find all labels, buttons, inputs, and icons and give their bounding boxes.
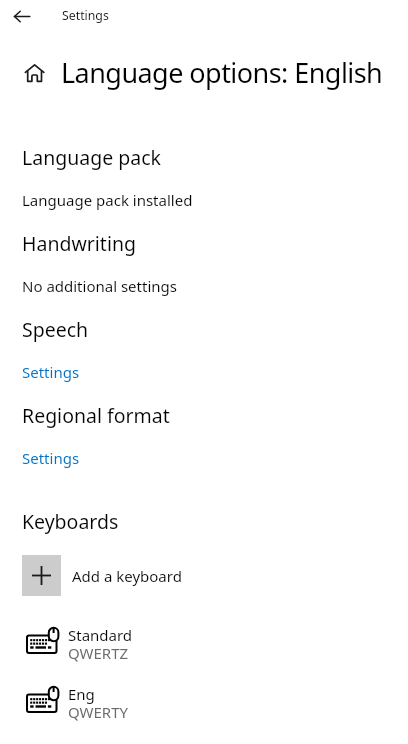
button[interactable]: Add a keyboard xyxy=(22,555,262,597)
staticText: QWERTY xyxy=(68,702,129,722)
button[interactable]: Settings xyxy=(0,0,58,20)
button[interactable]: Eng xyxy=(22,684,262,718)
button[interactable]: Settings xyxy=(0,0,58,20)
staticText: Handwriting xyxy=(22,230,136,257)
staticText: Settings xyxy=(62,7,109,24)
staticText: Language options: English xyxy=(61,54,383,91)
staticText: Language pack xyxy=(22,144,161,171)
staticText: Eng xyxy=(68,684,95,704)
staticText: QWERTZ xyxy=(68,643,129,663)
staticText: Add a keyboard xyxy=(72,566,182,586)
staticText: Keyboards xyxy=(22,508,119,535)
staticText: No additional settings xyxy=(22,276,177,296)
button[interactable] xyxy=(8,4,38,30)
staticText: Language pack installed xyxy=(22,190,193,210)
staticText: Standard xyxy=(68,625,133,645)
button[interactable]: Standard xyxy=(22,625,262,659)
staticText: Speech xyxy=(22,316,89,343)
staticText: Regional format xyxy=(22,402,170,429)
